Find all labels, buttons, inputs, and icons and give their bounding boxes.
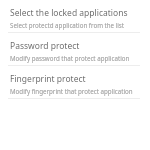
staticText: Fingerprint protect [10, 73, 86, 85]
button[interactable]: Select the locked applications [0, 3, 150, 33]
staticText: Password protect [10, 40, 80, 52]
staticText: Select the locked applications [10, 7, 128, 19]
staticText: Select protectd application from the lis… [10, 21, 125, 29]
button[interactable]: Fingerprint protect [0, 69, 150, 99]
button[interactable]: Password protect [0, 36, 150, 66]
staticText: Modify fingerprint that protect applicat… [10, 87, 133, 95]
staticText: Modify password that protect application [10, 54, 130, 62]
